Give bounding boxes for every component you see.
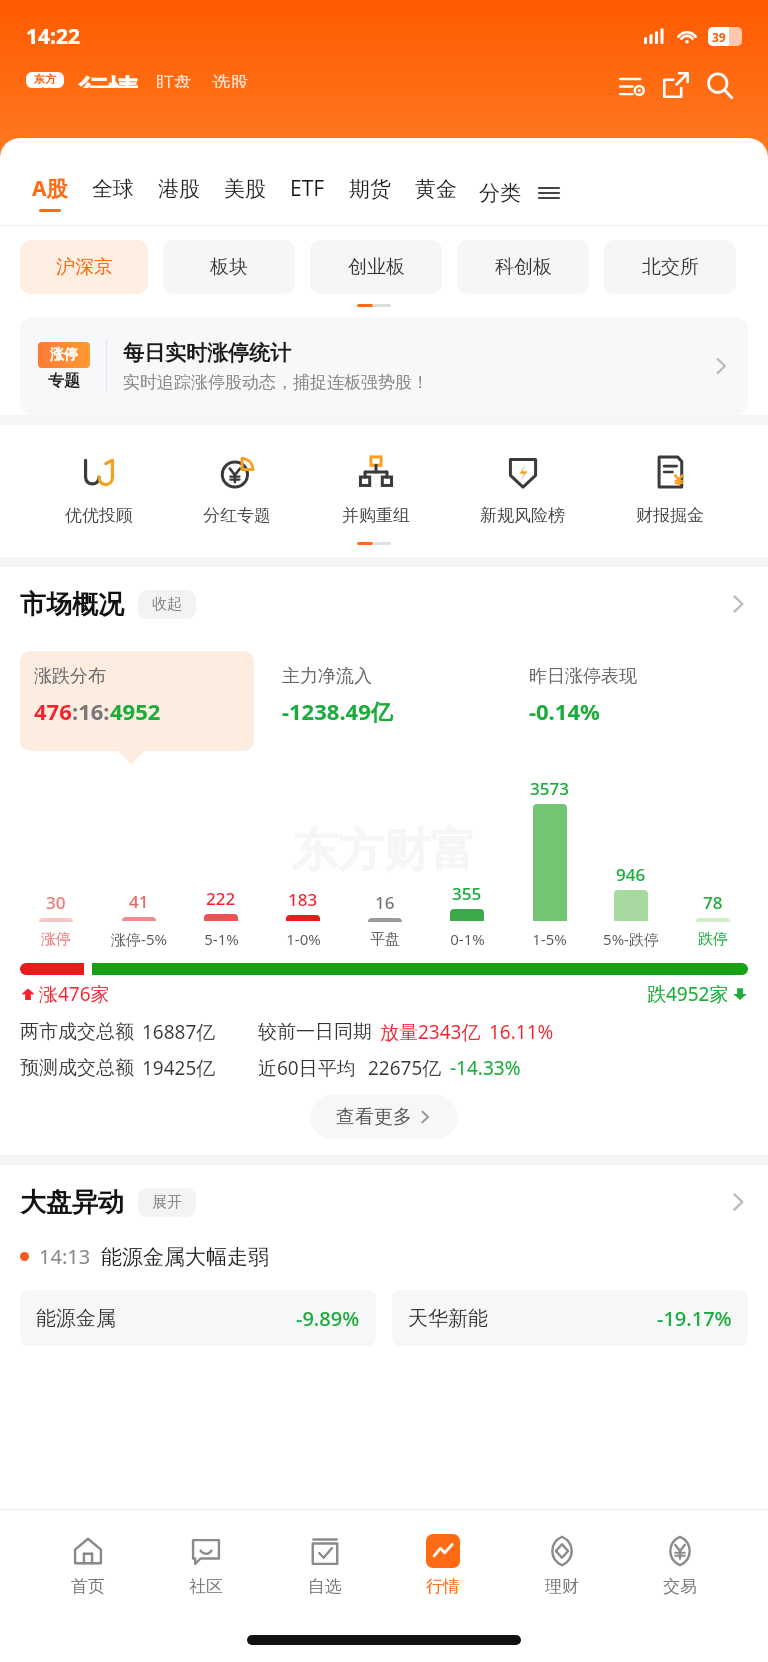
staticText: 东方 xyxy=(34,72,56,86)
button[interactable]: 大盘异动 xyxy=(0,1165,768,1239)
staticText: 涨停 xyxy=(41,930,71,949)
staticText: 0-1% xyxy=(450,929,485,949)
button[interactable]: 搜索 xyxy=(698,72,742,88)
button[interactable]: 更多分类 xyxy=(531,175,567,211)
button[interactable]: 昨日涨停表现 xyxy=(515,651,748,751)
staticText: 16 xyxy=(375,891,395,914)
button[interactable]: 涨停 xyxy=(20,317,748,415)
staticText: 41 xyxy=(129,890,149,913)
staticText: 交易 xyxy=(663,1576,697,1597)
button[interactable]: 港股 xyxy=(146,160,212,226)
button[interactable]: 并购重组 xyxy=(336,447,416,528)
staticText: 每日实时涨停统计 xyxy=(123,340,291,366)
staticText: A股 xyxy=(32,174,68,203)
staticText: 355 xyxy=(452,882,482,905)
staticText: 沪深京 xyxy=(56,255,113,279)
staticText: 专题 xyxy=(48,371,80,391)
staticText: 预测成交总额 xyxy=(20,1056,134,1080)
button[interactable]: 优优投顾 xyxy=(59,447,139,528)
button[interactable]: 天华新能 xyxy=(392,1290,748,1346)
button[interactable]: A股 xyxy=(20,160,80,226)
button[interactable]: 期货 xyxy=(337,160,403,226)
staticText: 首页 xyxy=(71,1576,105,1597)
button[interactable]: 理财 xyxy=(531,1528,593,1601)
staticText: 新规风险榜 xyxy=(480,505,565,526)
button[interactable]: 美股 xyxy=(212,160,278,226)
staticText: 全球 xyxy=(92,176,134,202)
staticText: 财报掘金 xyxy=(636,505,704,526)
staticText: 创业板 xyxy=(348,255,405,279)
staticText: 东方财富 xyxy=(292,822,476,880)
staticText: 14:22 xyxy=(26,22,80,51)
staticText: 涨停 xyxy=(50,346,78,364)
staticText: 社区 xyxy=(189,1576,223,1597)
button[interactable]: 能源金属 xyxy=(20,1290,376,1346)
staticText: 946 xyxy=(616,863,646,886)
staticText: 大盘异动 xyxy=(20,1186,124,1219)
button[interactable]: 创业板 xyxy=(310,240,442,294)
staticText: 涨476家 xyxy=(39,981,110,1007)
staticText: 展开 xyxy=(152,1193,182,1212)
staticText: 较前一日同期 xyxy=(258,1020,372,1044)
staticText: 昨日涨停表现 xyxy=(529,665,637,688)
staticText: 183 xyxy=(288,888,318,911)
button[interactable]: 主力净流入 xyxy=(268,651,501,751)
button[interactable]: 市场概况 xyxy=(0,567,768,641)
button[interactable]: 分类 xyxy=(469,180,531,206)
staticText: 22675亿 xyxy=(368,1055,442,1081)
button[interactable]: ETF xyxy=(278,160,337,226)
staticText: 优优投顾 xyxy=(65,505,133,526)
staticText: 跌4952家 xyxy=(647,981,729,1007)
button[interactable]: 分红专题 xyxy=(197,447,277,528)
button[interactable]: 新规风险榜 xyxy=(474,447,571,528)
staticText: 跌停 xyxy=(698,930,728,949)
button[interactable]: 自选 xyxy=(294,1528,356,1601)
staticText: ETF xyxy=(290,174,325,203)
staticText: 能源金属大幅走弱 xyxy=(101,1244,269,1270)
staticText: -19.17% xyxy=(657,1305,732,1332)
staticText: 1-0% xyxy=(286,929,321,949)
staticText: 两市成交总额 xyxy=(20,1020,134,1044)
staticText: 收起 xyxy=(152,595,182,614)
button[interactable]: 选股 xyxy=(210,72,250,88)
staticText: 期货 xyxy=(349,176,391,202)
staticText: 涨跌分布 xyxy=(34,665,106,688)
button[interactable]: 全球 xyxy=(80,160,146,226)
staticText: 分红专题 xyxy=(203,505,271,526)
staticText: 科创板 xyxy=(495,255,552,279)
button[interactable]: 14:13 xyxy=(0,1239,768,1274)
staticText: 港股 xyxy=(158,176,200,202)
staticText: 16.11% xyxy=(489,1019,554,1045)
staticText: 16887亿 xyxy=(142,1019,216,1045)
button[interactable]: 涨跌分布 xyxy=(20,651,254,751)
staticText: -9.89% xyxy=(296,1305,360,1332)
button[interactable]: 财报掘金 xyxy=(630,447,710,528)
staticText: 行情 xyxy=(426,1576,460,1597)
staticText: 北交所 xyxy=(642,255,699,279)
button[interactable]: 交易 xyxy=(649,1528,711,1601)
button[interactable]: 行情 xyxy=(412,1528,474,1601)
staticText: 5-1% xyxy=(204,929,239,949)
button[interactable]: 展开 xyxy=(138,1188,196,1217)
button[interactable]: 盯盘 xyxy=(154,72,194,88)
button[interactable]: 黄金 xyxy=(403,160,469,226)
button[interactable]: 首页 xyxy=(57,1528,119,1601)
staticText: 实时追踪涨停股动态，捕捉连板强势股！ xyxy=(123,372,429,393)
staticText: -1238.49亿 xyxy=(282,696,393,726)
button[interactable]: 科创板 xyxy=(457,240,589,294)
button[interactable]: 设置 xyxy=(610,72,654,88)
button[interactable]: 北交所 xyxy=(604,240,736,294)
staticText: 能源金属 xyxy=(36,1306,116,1331)
button[interactable]: 板块 xyxy=(163,240,295,294)
button[interactable]: 查看更多 xyxy=(310,1095,458,1139)
button[interactable]: 收起 xyxy=(138,590,196,619)
button[interactable]: 分享 xyxy=(654,72,698,88)
staticText: 1-5% xyxy=(532,929,567,949)
staticText: 分类 xyxy=(479,180,521,206)
staticText: 5%-跌停 xyxy=(603,929,659,949)
staticText: 30 xyxy=(46,891,66,914)
button[interactable]: 社区 xyxy=(175,1528,237,1601)
staticText: 黄金 xyxy=(415,176,457,202)
button[interactable]: 沪深京 xyxy=(20,240,148,294)
staticText: 财富 xyxy=(34,86,56,88)
